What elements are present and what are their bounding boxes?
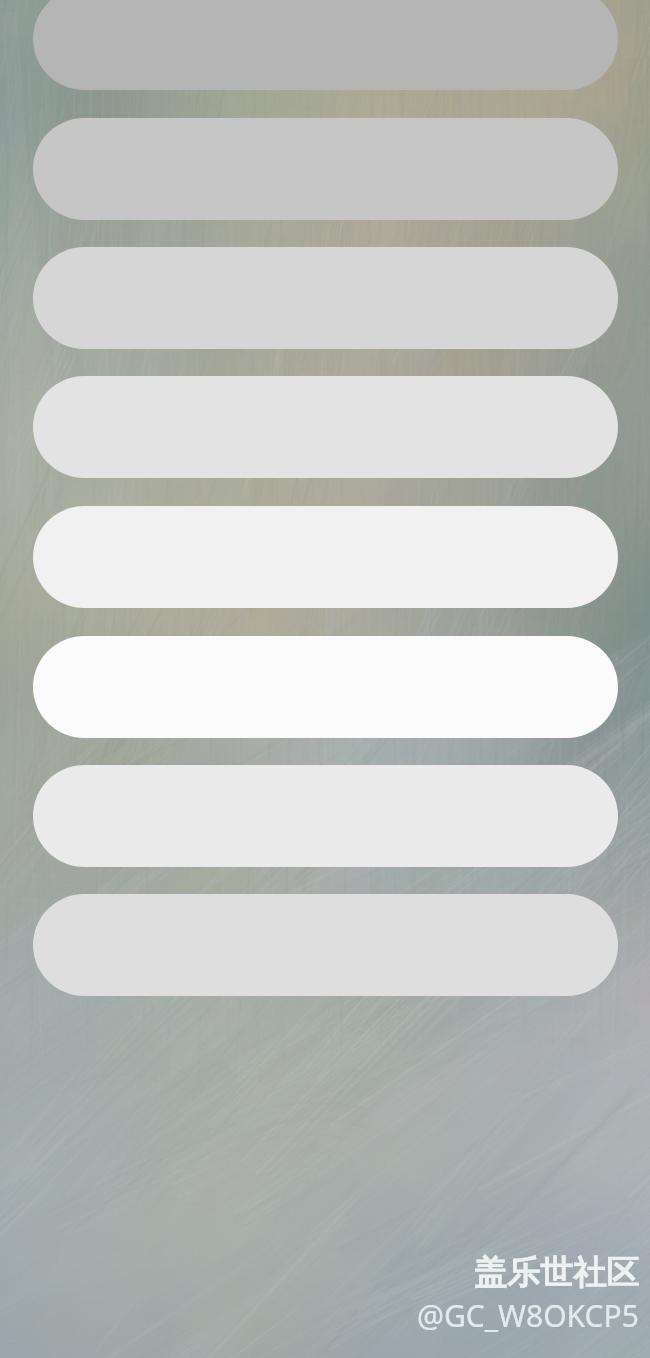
staticText: @GC_W8OKCP5 — [417, 1295, 639, 1336]
button[interactable]: Slot 8 — [33, 894, 618, 996]
button[interactable]: Slot 2 — [33, 118, 618, 220]
button[interactable]: Slot 4 — [33, 376, 618, 478]
button[interactable]: Slot 3 — [33, 247, 618, 349]
staticText: 盖乐世社区 — [474, 1252, 639, 1294]
button[interactable]: Slot 1 — [33, 0, 618, 90]
button[interactable]: Slot 5 — [33, 506, 618, 608]
button[interactable]: Slot 7 — [33, 765, 618, 867]
button[interactable]: Slot 6 — [33, 636, 618, 738]
